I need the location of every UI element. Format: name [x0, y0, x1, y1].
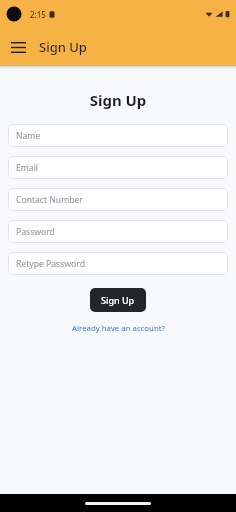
- staticText: Name: [16, 130, 41, 142]
- button[interactable]: Contact Number: [8, 188, 228, 211]
- staticText: Already have an account?: [72, 323, 165, 334]
- staticText: Contact Number: [16, 194, 83, 206]
- button[interactable]: Sign Up: [90, 288, 146, 312]
- staticText: Sign Up: [101, 294, 135, 306]
- button[interactable]: Email: [8, 156, 228, 179]
- staticText: Sign Up: [0, 90, 236, 110]
- staticText: Email: [16, 162, 39, 174]
- button[interactable]: Name: [8, 124, 228, 147]
- button[interactable]: Already have an account?: [0, 323, 236, 334]
- button[interactable]: Password: [8, 220, 228, 243]
- button[interactable]: Open navigation menu: [6, 35, 30, 59]
- button[interactable]: Retype Password: [8, 252, 228, 275]
- staticText: Sign Up: [39, 38, 87, 56]
- staticText: Retype Password: [16, 258, 85, 270]
- staticText: Password: [16, 226, 55, 238]
- staticText: 2:15: [30, 9, 46, 20]
